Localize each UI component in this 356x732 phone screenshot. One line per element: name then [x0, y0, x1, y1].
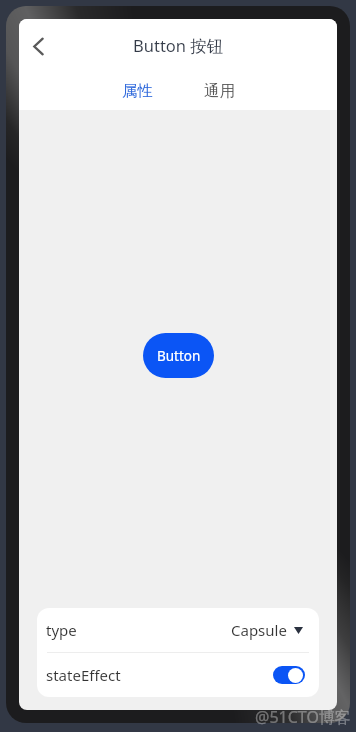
staticText: Button 按钮	[133, 34, 224, 57]
staticText: stateEffect	[46, 665, 121, 685]
button[interactable]: type	[37, 608, 319, 652]
button[interactable]: Button	[143, 333, 214, 378]
staticText: @51CTO博客	[255, 706, 351, 728]
button[interactable]: 属性	[111, 74, 163, 108]
button[interactable]: stateEffect	[37, 653, 319, 697]
staticText: 属性	[122, 81, 153, 101]
button[interactable]: stateEffect toggle	[273, 666, 305, 684]
button[interactable]: 通用	[193, 74, 245, 108]
staticText: type	[46, 620, 77, 640]
staticText: 通用	[204, 81, 235, 101]
button[interactable]: Back	[21, 29, 55, 63]
staticText: Capsule	[231, 620, 287, 640]
staticText: Button	[157, 347, 201, 365]
